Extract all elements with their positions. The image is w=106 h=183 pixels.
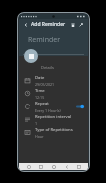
button[interactable]: Back: [22, 21, 29, 28]
button[interactable]: Back: [63, 163, 70, 170]
staticText: Hour: [35, 134, 44, 139]
button[interactable]: Type of Repetitions: [19, 126, 88, 139]
staticText: Every 1 Hour(s): [35, 108, 61, 113]
button[interactable]: Home: [50, 163, 57, 170]
staticText: Add Reminder: [31, 21, 66, 28]
staticText: Reminder: [28, 35, 61, 45]
staticText: 1: [35, 121, 38, 126]
staticText: Time: [35, 88, 45, 94]
staticText: Date: [35, 75, 45, 81]
button[interactable]: Add attachment: [24, 49, 38, 63]
button[interactable]: Save: [69, 21, 77, 29]
button[interactable]: Time: [19, 87, 88, 100]
button[interactable]: Toggle repeat: [76, 104, 84, 109]
button[interactable]: Repeat: [19, 100, 88, 113]
staticText: Repetition interval: [35, 114, 72, 120]
staticText: Type of Repetitions: [35, 127, 73, 133]
button[interactable]: Date: [19, 74, 88, 87]
button[interactable]: Assistant: [25, 163, 32, 170]
staticText: Repeat: [35, 101, 49, 107]
staticText: Details: [41, 65, 54, 70]
button[interactable]: Repetition interval: [19, 113, 88, 126]
button[interactable]: Screenshot: [75, 163, 82, 170]
staticText: 12:15: [35, 95, 45, 100]
button[interactable]: Recents: [37, 163, 44, 170]
staticText: 29/05/2021: [35, 82, 55, 87]
button[interactable]: Expand: [77, 21, 85, 29]
